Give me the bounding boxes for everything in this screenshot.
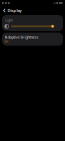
staticText: Display <box>7 8 21 13</box>
button[interactable]: Display <box>0 6 23 15</box>
button[interactable]: Adaptive brightness <box>0 33 65 46</box>
staticText: On <box>5 40 9 43</box>
staticText: Adaptive brightness <box>5 34 39 40</box>
staticText: Light <box>5 17 13 23</box>
